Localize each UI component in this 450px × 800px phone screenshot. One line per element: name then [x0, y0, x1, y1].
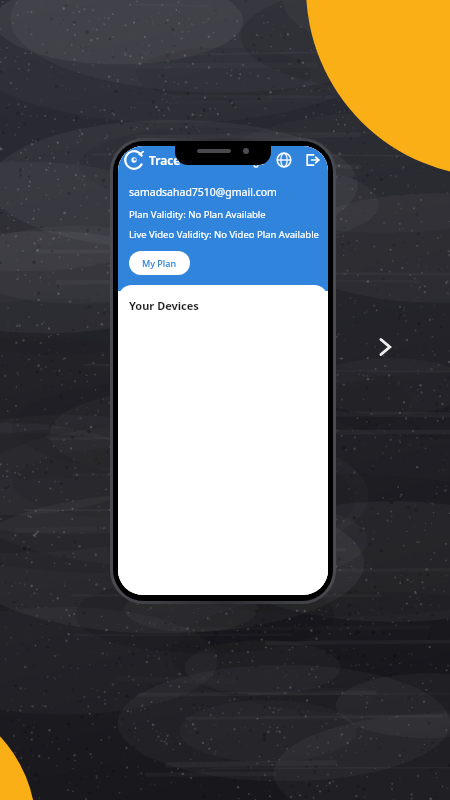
button[interactable]: My Plan [129, 251, 190, 275]
staticText: samadsahad7510@gmail.com [129, 185, 277, 199]
staticText: Plan Validity: No Plan Available [129, 208, 266, 221]
staticText: Trace [149, 152, 181, 168]
button[interactable]: App logo [124, 150, 144, 170]
button[interactable]: Logout [302, 150, 322, 170]
staticText: Live Video Validity: No Video Plan Avail… [129, 228, 319, 241]
staticText: My Plan [142, 257, 177, 269]
button[interactable]: Language [274, 150, 294, 170]
button[interactable]: Notifications [246, 150, 266, 170]
button[interactable]: Next [368, 330, 402, 364]
staticText: Your Devices [129, 298, 199, 313]
